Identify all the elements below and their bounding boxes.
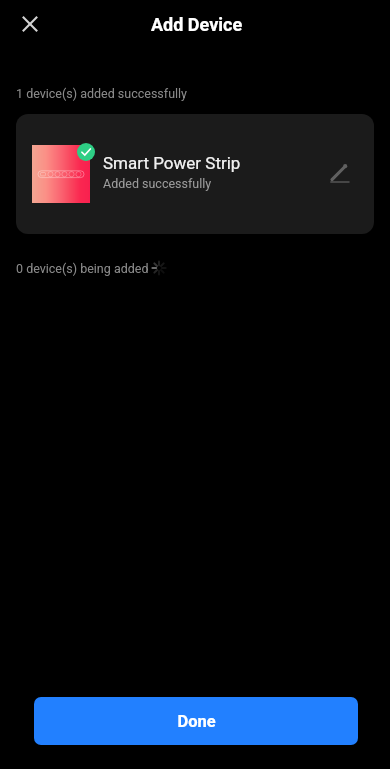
button[interactable]: Rename device <box>320 154 360 194</box>
staticText: Added successfully <box>103 176 212 191</box>
button[interactable]: Close <box>6 0 53 47</box>
button[interactable]: Done <box>34 697 358 745</box>
staticText: Smart Power Strip <box>103 153 241 173</box>
staticText: 1 device(s) added successfully <box>16 86 188 101</box>
staticText: Add Device <box>151 14 243 35</box>
staticText: 0 device(s) being added <box>16 261 149 276</box>
button[interactable]: Smart Power Strip <box>16 114 374 234</box>
staticText: Done <box>177 712 216 731</box>
